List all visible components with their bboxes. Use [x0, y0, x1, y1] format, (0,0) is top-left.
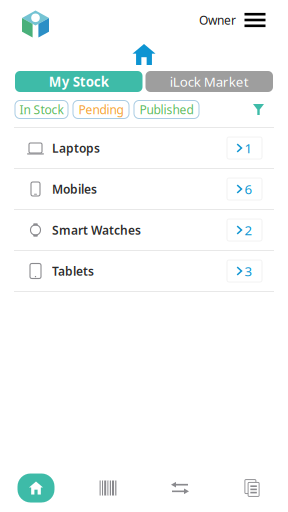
button[interactable]: Published — [134, 100, 199, 118]
button[interactable]: 1 — [227, 137, 262, 159]
button[interactable]: Mobiles — [0, 169, 288, 210]
button[interactable]: My Stock — [15, 71, 142, 92]
button[interactable]: Pending — [73, 100, 129, 118]
staticText: Owner — [199, 12, 236, 28]
staticText: 2 — [244, 221, 252, 239]
staticText: In Stock — [19, 101, 63, 117]
staticText: Published — [139, 101, 193, 117]
button[interactable]: Reports — [216, 466, 288, 510]
staticText: Laptops — [52, 140, 100, 156]
button[interactable]: iLock Market — [145, 71, 273, 92]
button[interactable]: 3 — [227, 260, 262, 282]
staticText: Tablets — [52, 263, 94, 279]
staticText: 1 — [244, 139, 252, 157]
staticText: iLock Market — [170, 73, 249, 90]
button[interactable]: Smart Watches — [0, 210, 288, 251]
button[interactable]: Transfers — [144, 466, 216, 510]
button[interactable]: In Stock — [15, 100, 68, 118]
button[interactable]: Owner — [199, 8, 236, 32]
staticText: My Stock — [49, 73, 109, 90]
button[interactable]: Laptops — [0, 128, 288, 169]
button[interactable]: Scan barcode — [72, 466, 144, 510]
staticText: Mobiles — [52, 181, 97, 197]
staticText: 6 — [244, 180, 252, 198]
button[interactable]: Home logo — [22, 10, 49, 37]
button[interactable]: Filter — [253, 104, 264, 115]
button[interactable]: Tablets — [0, 251, 288, 292]
staticText: 3 — [244, 262, 252, 280]
button[interactable]: 6 — [227, 178, 262, 200]
button[interactable]: Menu — [240, 8, 270, 32]
button[interactable]: Home — [0, 466, 72, 510]
staticText: Pending — [78, 101, 123, 117]
button[interactable]: 2 — [227, 219, 262, 241]
staticText: Smart Watches — [52, 222, 141, 238]
